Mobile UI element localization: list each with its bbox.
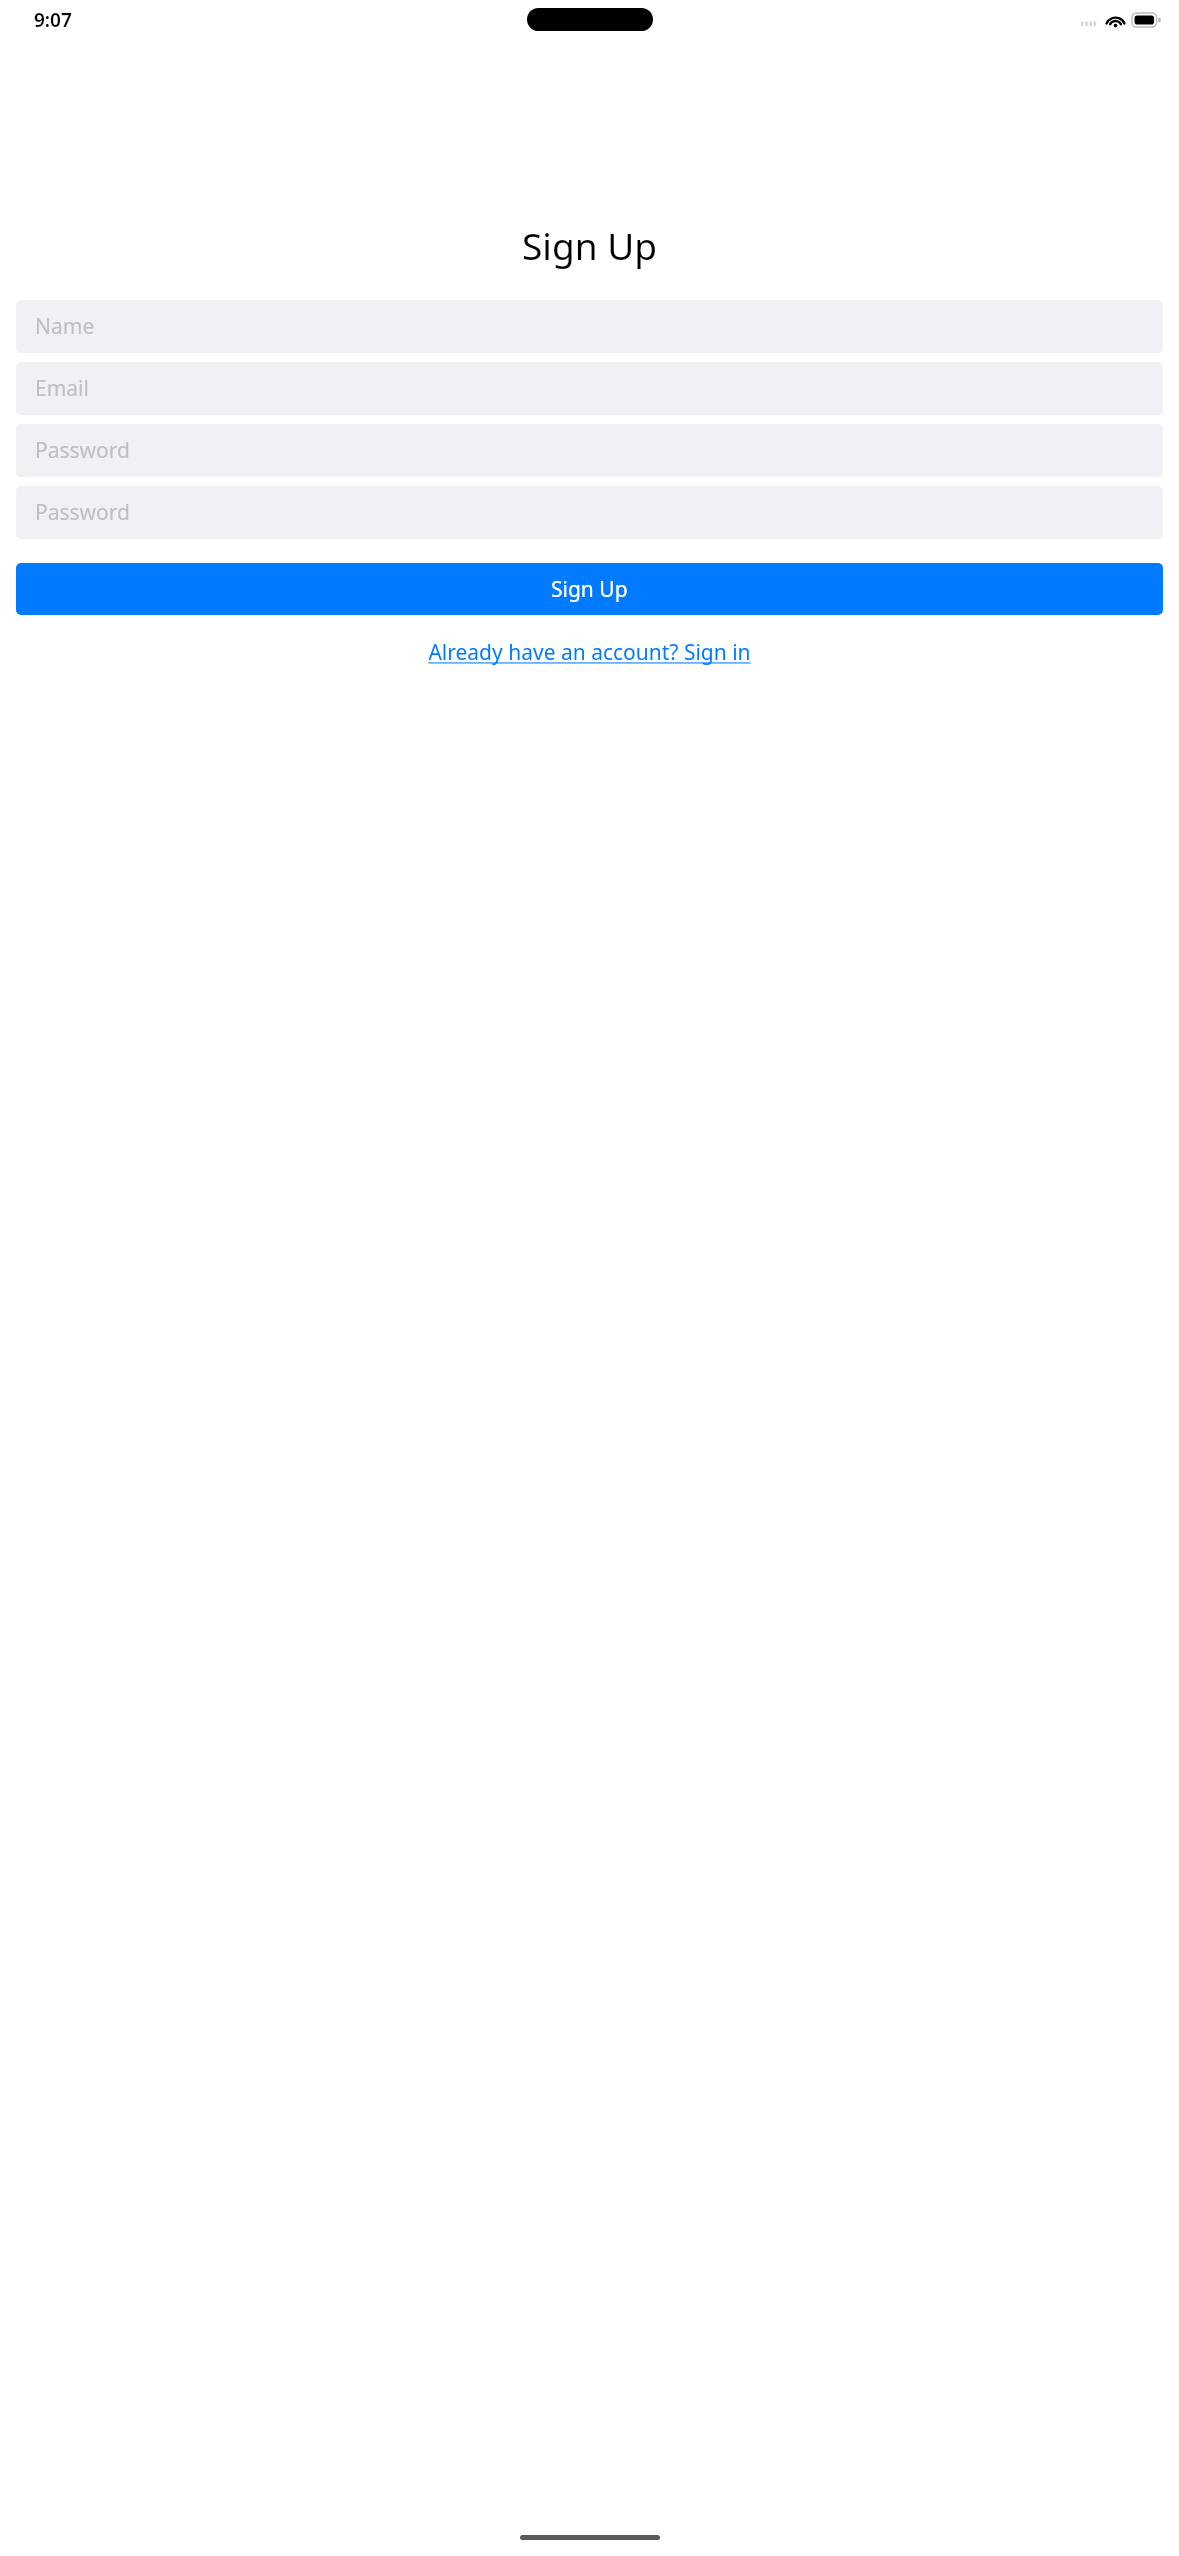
- staticText: 9:07: [34, 7, 72, 33]
- staticText: Already have an account? Sign in: [428, 638, 751, 667]
- button[interactable]: Sign Up: [16, 563, 1163, 615]
- button[interactable]: Email: [16, 362, 1163, 415]
- staticText: Email: [35, 374, 89, 403]
- button[interactable]: Name: [16, 300, 1163, 353]
- staticText: Sign Up: [522, 220, 657, 270]
- staticText: Sign Up: [551, 575, 628, 604]
- other: Battery: [1132, 13, 1160, 27]
- button[interactable]: Password: [16, 424, 1163, 477]
- staticText: Name: [35, 312, 95, 341]
- button[interactable]: Password: [16, 486, 1163, 539]
- staticText: Password: [35, 498, 130, 527]
- staticText: Password: [35, 436, 130, 465]
- other: Wi-Fi: [1106, 13, 1125, 27]
- button[interactable]: Already have an account? Sign in: [420, 632, 759, 673]
